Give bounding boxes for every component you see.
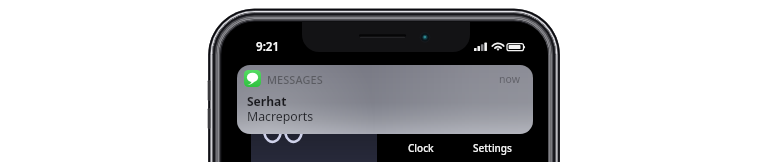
- staticText: now: [499, 72, 520, 86]
- staticText: 9:21: [256, 39, 280, 55]
- button[interactable]: Clock: [388, 138, 454, 158]
- staticText: Macreports: [247, 108, 314, 125]
- staticText: Clock: [408, 141, 434, 155]
- staticText: MESSAGES: [267, 72, 323, 87]
- staticText: Serhat: [247, 93, 287, 109]
- button[interactable]: MESSAGES: [237, 65, 533, 134]
- button[interactable]: Settings: [459, 138, 525, 158]
- staticText: Settings: [473, 141, 512, 155]
